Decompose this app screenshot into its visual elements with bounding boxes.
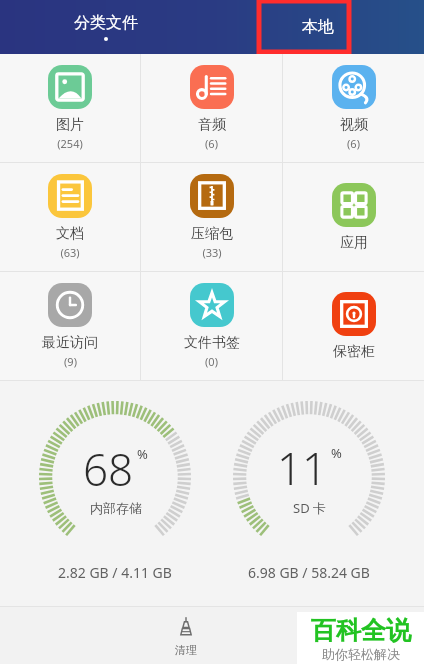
button[interactable]: 图片 (0, 54, 140, 162)
button[interactable]: 文件书签 (141, 272, 282, 380)
button[interactable]: 清理 (120, 606, 251, 664)
staticText: 音频 (198, 116, 226, 134)
button[interactable]: 菜单 (251, 606, 382, 664)
staticText: 视频 (340, 116, 368, 134)
staticText: 6.98 GB / 58.24 GB (248, 563, 370, 582)
staticText: 2.82 GB / 4.11 GB (58, 563, 172, 582)
button[interactable]: 保密柜 (283, 272, 424, 380)
button[interactable]: 分类文件 (0, 0, 212, 54)
button[interactable]: 最近访问 (0, 272, 140, 380)
staticText: (6) (205, 136, 218, 151)
staticText: (33) (202, 245, 222, 260)
staticText: (6) (347, 136, 360, 151)
staticText: 68 (83, 439, 134, 499)
staticText: 压缩包 (191, 225, 233, 243)
staticText: 本地 (302, 17, 334, 37)
staticText: 百科全说 (311, 615, 411, 646)
staticText: % (137, 445, 148, 463)
staticText: SD 卡 (293, 499, 327, 517)
staticText: (63) (60, 245, 80, 260)
staticText: 文件书签 (184, 334, 240, 352)
button[interactable]: 压缩包 (141, 163, 282, 271)
button[interactable]: 视频 (283, 54, 424, 162)
button[interactable]: 音频 (141, 54, 282, 162)
staticText: 应用 (340, 234, 368, 252)
button[interactable]: 应用 (283, 163, 424, 271)
button[interactable]: 文档 (0, 163, 140, 271)
staticText: 分类文件 (74, 13, 138, 33)
staticText: (254) (57, 136, 83, 151)
staticText: % (331, 444, 342, 462)
staticText: 11 (277, 438, 328, 498)
staticText: 保密柜 (333, 343, 375, 361)
staticText: (9) (64, 354, 77, 369)
button[interactable]: 本地 (212, 0, 424, 54)
staticText: 内部存储 (90, 500, 142, 516)
staticText: 文档 (56, 225, 84, 243)
staticText: 最近访问 (42, 334, 98, 352)
staticText: 菜单 (306, 643, 328, 657)
staticText: 图片 (56, 116, 84, 134)
staticText: (0) (205, 354, 218, 369)
staticText: 助你轻松解决 (322, 646, 400, 662)
staticText: 清理 (175, 643, 197, 657)
